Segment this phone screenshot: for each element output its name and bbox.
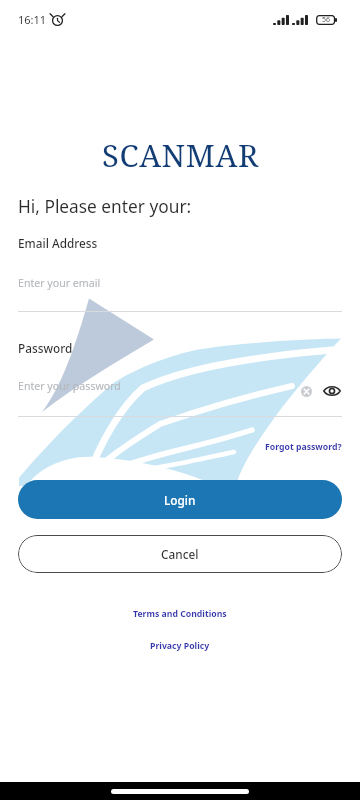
staticText: 56 (322, 15, 331, 25)
staticText: Enter your email (18, 276, 101, 290)
button[interactable]: Terms and Conditions (0, 605, 360, 623)
button[interactable]: Privacy Policy (0, 637, 360, 655)
button[interactable]: Login (18, 480, 342, 519)
staticText: Email Address (18, 235, 98, 251)
button[interactable]: Show password (321, 380, 343, 402)
staticText: Privacy Policy (150, 640, 210, 652)
staticText: 16:11 (18, 12, 47, 27)
staticText: Terms and Conditions (133, 608, 227, 620)
staticText: Cancel (161, 546, 199, 562)
staticText: Login (164, 492, 196, 508)
staticText: Forgot password? (265, 441, 342, 453)
button[interactable]: Clear password (295, 380, 317, 402)
staticText: Hi, Please enter your: (18, 195, 192, 219)
staticText: Password (18, 340, 73, 356)
button[interactable]: Forgot password? (260, 438, 342, 456)
staticText: SCANMAR (102, 134, 259, 174)
button[interactable]: Cancel (18, 535, 342, 573)
staticText: Enter your password (18, 379, 121, 393)
